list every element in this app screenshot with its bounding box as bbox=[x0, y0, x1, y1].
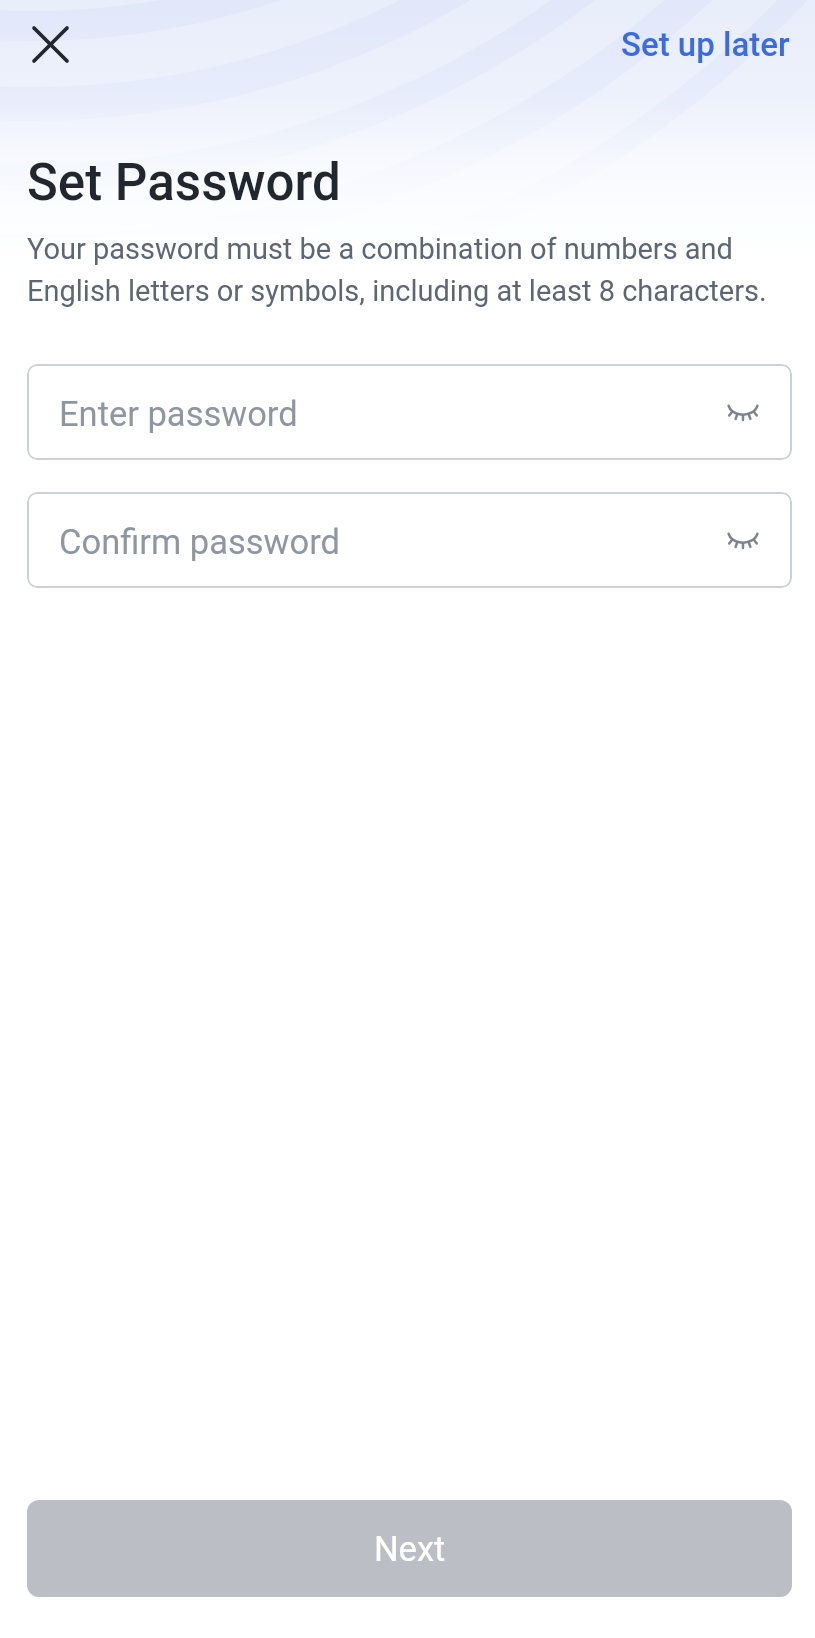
button[interactable]: Enter password bbox=[27, 364, 792, 460]
button[interactable]: Show password bbox=[712, 509, 774, 571]
button[interactable]: Set up later bbox=[597, 11, 815, 78]
button[interactable]: Close bbox=[14, 8, 86, 80]
button[interactable]: Next bbox=[27, 1500, 792, 1597]
staticText: Confirm password bbox=[59, 522, 340, 562]
staticText: Enter password bbox=[59, 394, 298, 434]
staticText: Set Password bbox=[27, 153, 341, 213]
staticText: Set up later bbox=[621, 25, 790, 64]
button[interactable]: Show password bbox=[712, 381, 774, 443]
staticText: Next bbox=[374, 1529, 446, 1569]
button[interactable]: Confirm password bbox=[27, 492, 792, 588]
staticText: Your password must be a combination of n… bbox=[27, 232, 795, 308]
